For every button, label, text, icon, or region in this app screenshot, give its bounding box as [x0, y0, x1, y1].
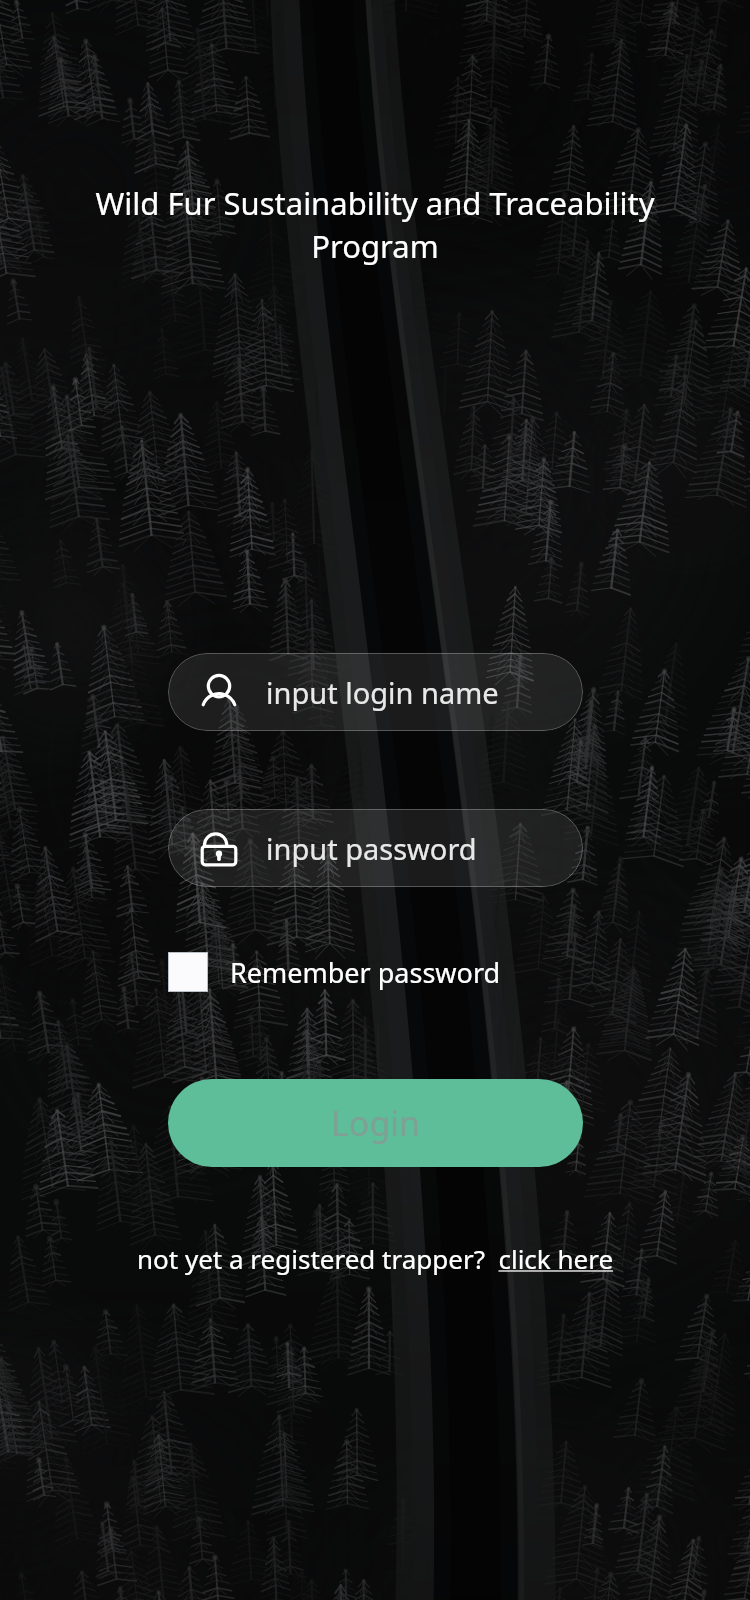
staticText: Remember password [230, 954, 501, 991]
staticText: Wild Fur Sustainability and Traceability… [28, 182, 722, 267]
other: input password [198, 827, 240, 869]
staticText: input password [266, 829, 477, 868]
other: input login name [198, 671, 240, 713]
staticText: input login name [266, 673, 499, 712]
staticText: not yet a registered trapper? click here [137, 1241, 614, 1276]
button[interactable]: Login [168, 1079, 583, 1167]
staticText: Login [331, 1100, 421, 1146]
button[interactable]: not yet a registered trapper? click here [129, 1237, 622, 1280]
button[interactable]: input login name [168, 653, 583, 731]
button[interactable]: Remember password [168, 952, 583, 992]
button[interactable]: input password [168, 809, 583, 887]
